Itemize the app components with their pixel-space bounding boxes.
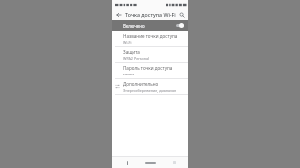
button[interactable]: Главный экран — [141, 158, 159, 167]
staticText: Энергосбережение, диапазон точки доступа — [123, 88, 184, 93]
staticText: Название точки доступа — [123, 33, 178, 39]
button[interactable]: Поиск — [177, 10, 186, 19]
button[interactable]: Защита — [112, 47, 188, 62]
staticText: •••••••• — [123, 72, 135, 77]
staticText: Пароль точки доступа — [123, 65, 173, 71]
staticText: Защита — [123, 49, 140, 55]
button[interactable]: Пароль точки доступа — [112, 63, 188, 78]
button[interactable]: Назад — [122, 158, 132, 167]
staticText: Wi-Fi — [123, 40, 132, 45]
button[interactable]: Название точки доступа — [112, 31, 188, 46]
button[interactable]: Обзор — [169, 158, 179, 167]
staticText: Включено — [123, 23, 175, 29]
staticText: WPA2 Personal — [123, 56, 150, 61]
staticText: Дополнительно — [123, 81, 159, 87]
button[interactable]: Дополнительно — [112, 79, 188, 94]
button[interactable]: Включено — [112, 20, 188, 31]
staticText: Точка доступа Wi-Fi — [125, 11, 177, 18]
button[interactable]: Назад — [114, 10, 123, 19]
